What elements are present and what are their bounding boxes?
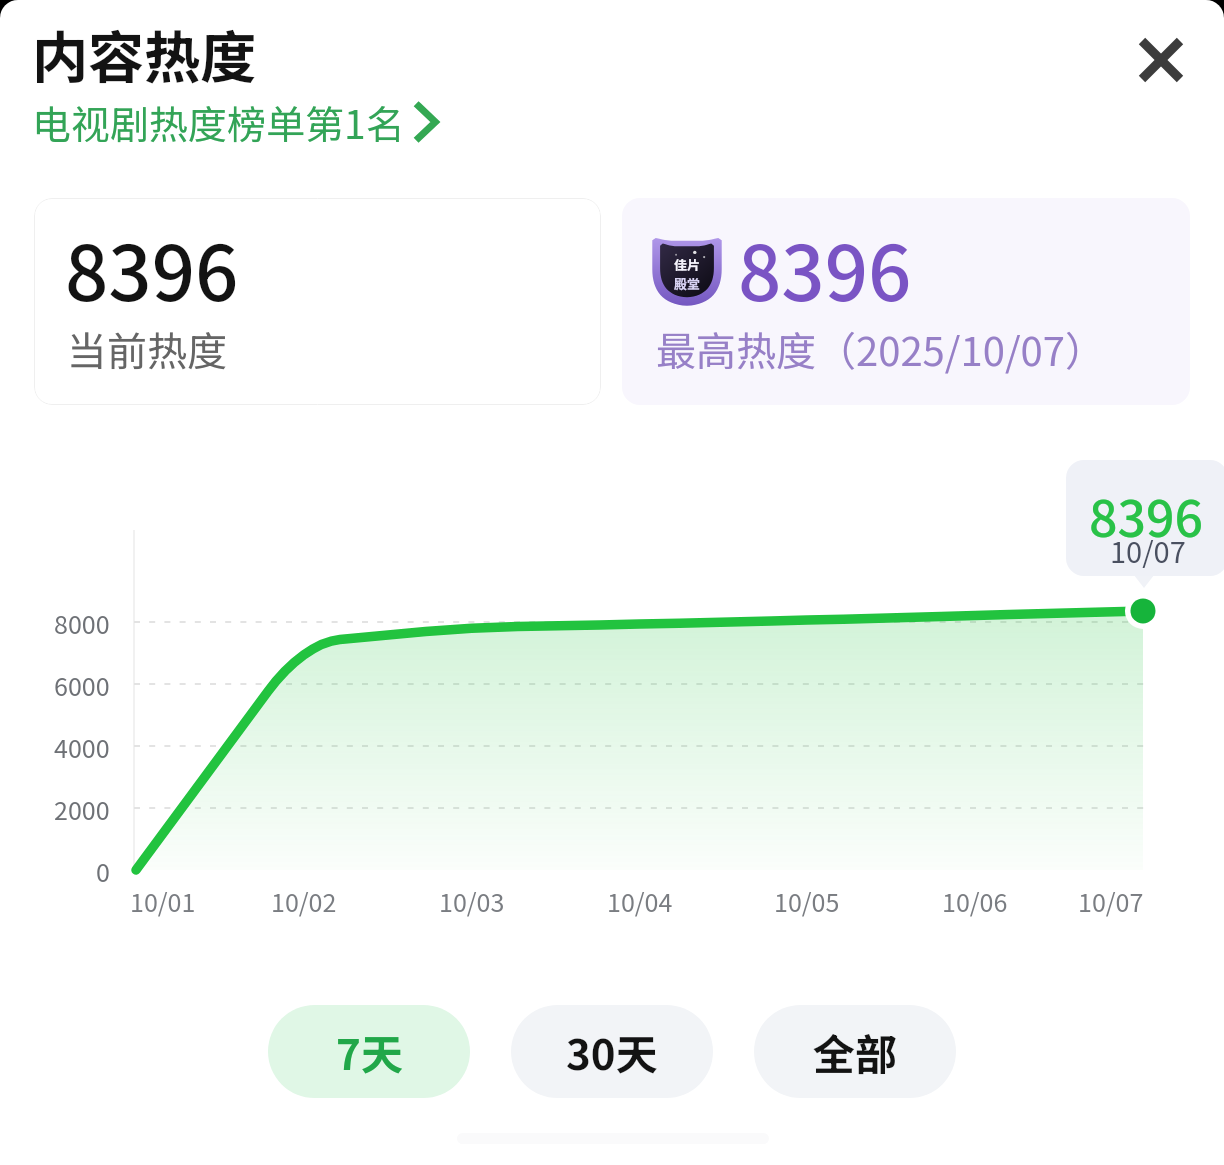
staticText: 10/03 bbox=[439, 883, 505, 919]
staticText: 6000 bbox=[54, 667, 110, 703]
staticText: 10/05 bbox=[774, 883, 840, 919]
staticText: 8000 bbox=[54, 605, 110, 641]
staticText: 10/07 bbox=[1110, 529, 1186, 571]
staticText: 内容热度 bbox=[32, 13, 256, 94]
button[interactable]: 电视剧热度榜单第1名 bbox=[32, 94, 438, 150]
staticText: 当前热度 bbox=[67, 320, 227, 378]
staticText: 10/04 bbox=[607, 883, 673, 919]
staticText: 8396 bbox=[1089, 479, 1203, 551]
staticText: 佳片 bbox=[674, 255, 701, 274]
button[interactable]: 全部 bbox=[754, 1005, 956, 1098]
staticText: 2000 bbox=[54, 791, 110, 827]
staticText: 8396 bbox=[65, 213, 239, 323]
staticText: 10/07 bbox=[1078, 883, 1144, 919]
button[interactable]: Close bbox=[1120, 19, 1202, 101]
staticText: 4000 bbox=[54, 729, 110, 765]
staticText: 0 bbox=[96, 853, 110, 889]
staticText: 最高热度（2025/10/07） bbox=[656, 320, 1105, 378]
button[interactable]: 30天 bbox=[511, 1005, 713, 1098]
staticText: 10/02 bbox=[271, 883, 337, 919]
button[interactable]: 7天 bbox=[268, 1005, 470, 1098]
staticText: 10/06 bbox=[942, 883, 1008, 919]
staticText: 殿堂 bbox=[674, 274, 701, 293]
staticText: 10/01 bbox=[130, 883, 196, 919]
staticText: 7天 bbox=[336, 1021, 403, 1082]
button[interactable]: 8396 bbox=[34, 198, 601, 405]
staticText: 全部 bbox=[813, 1021, 898, 1082]
staticText: 30天 bbox=[566, 1021, 658, 1082]
staticText: 电视剧热度榜单第1名 bbox=[32, 94, 405, 150]
staticText: 8396 bbox=[738, 213, 912, 323]
button[interactable]: 佳片 bbox=[622, 198, 1190, 405]
